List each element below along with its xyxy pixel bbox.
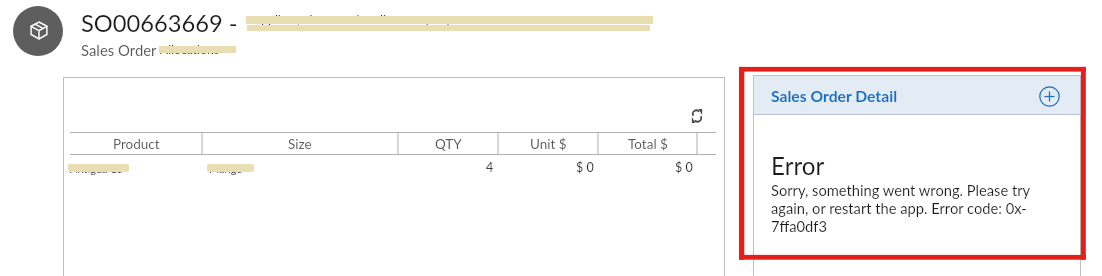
button[interactable]: Refresh [686,105,708,127]
staticText: Size [288,136,312,152]
staticText: Allocations [160,42,220,57]
staticText: Product [113,136,160,152]
button[interactable]: QTY [398,132,498,155]
staticText: Sales Order [81,41,157,59]
button[interactable]: Sales order [13,6,63,56]
button[interactable]: Total $ [598,132,697,155]
staticText: Sales Order Detail [771,87,898,106]
button[interactable]: Product [70,132,202,155]
button[interactable]: Add [1036,83,1062,109]
staticText: SO00663669 - [81,9,238,37]
staticText: Mango [209,162,243,175]
staticText: 4 [486,160,494,175]
staticText: Total $ [628,136,668,152]
staticText: Error [771,151,825,180]
staticText: Sorry, something went wrong. Please try … [771,181,1039,235]
staticText: Antigua 15 [70,162,124,175]
staticText: $ 0 [675,160,693,175]
staticText: Unit $ [530,136,567,152]
staticText: QTY [435,136,462,152]
staticText: Suppliers, Fine Merchandise Company - 11… [248,12,497,27]
button[interactable]: Size [202,132,398,155]
button[interactable]: Unit $ [498,132,598,155]
button[interactable]: Antigua 15 [63,158,723,176]
button[interactable]: Sales Order Detail [753,75,1081,115]
staticText: $ 0 [576,160,594,175]
